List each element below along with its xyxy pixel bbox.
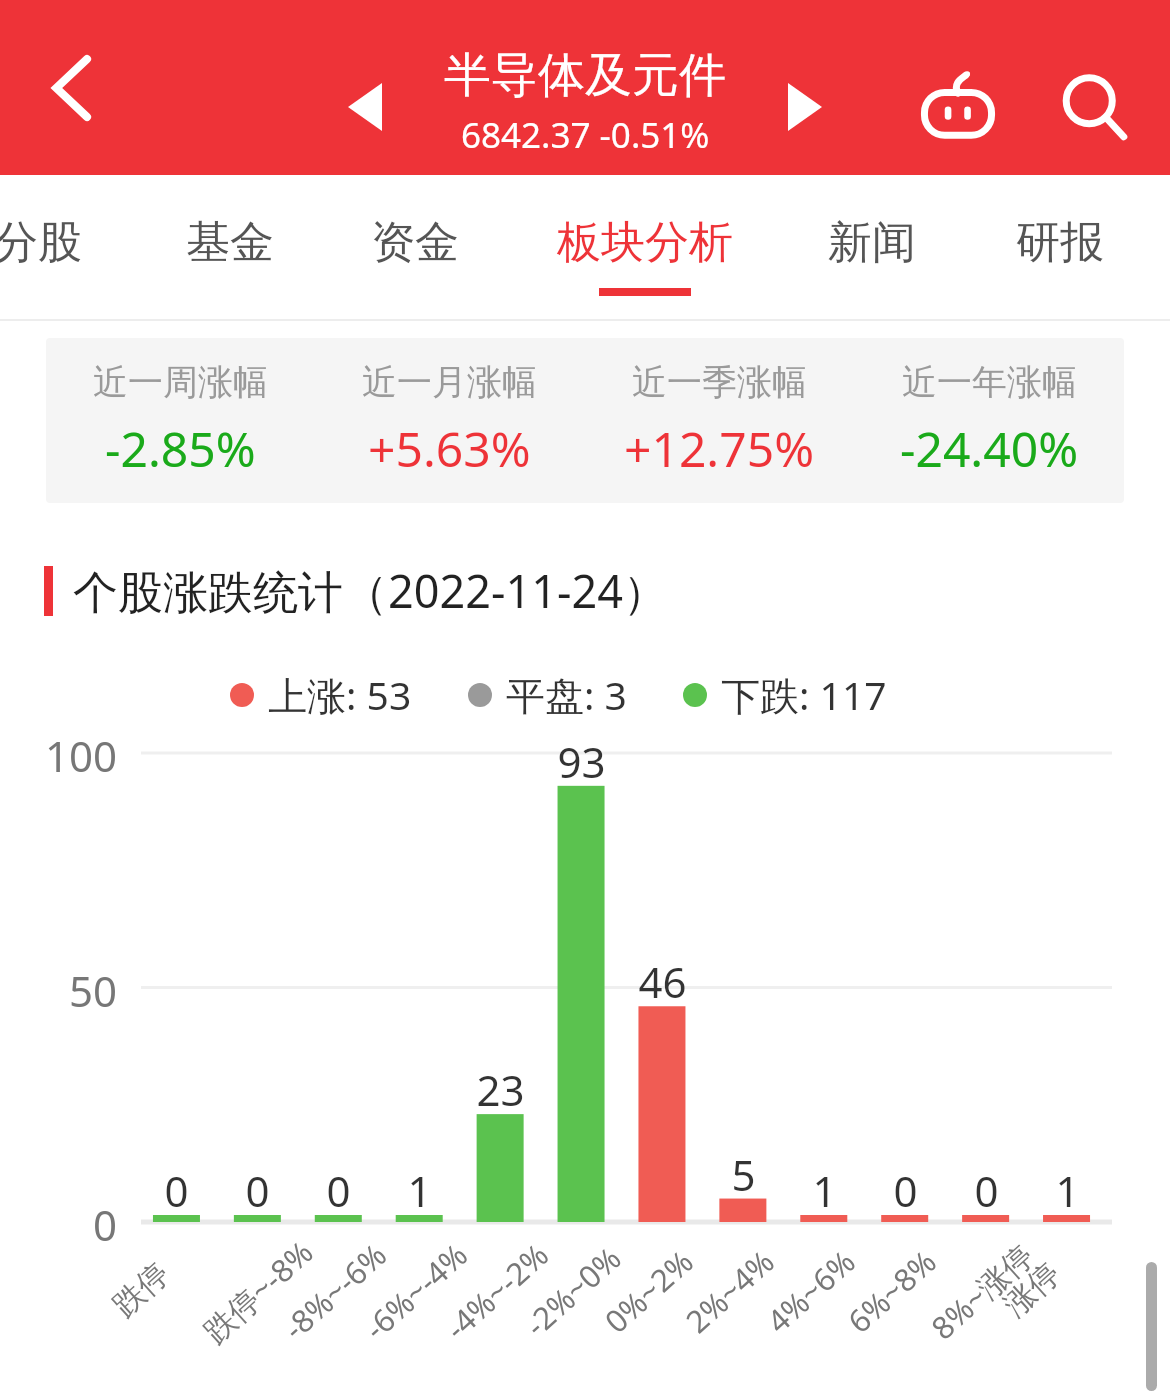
button[interactable]: 近一月涨幅 [315,338,584,503]
staticText: 近一周涨幅 [93,360,268,404]
staticText: 下跌: 117 [721,668,887,721]
button[interactable]: Previous sector [320,62,410,152]
button[interactable]: 近一周涨幅 [46,338,315,503]
staticText: 近一月涨幅 [362,360,537,404]
button[interactable]: 分股 [0,175,148,310]
staticText: 1 [1055,1162,1080,1219]
staticText: 0 [164,1162,189,1219]
staticText: +12.75% [624,416,815,481]
staticText: -2.85% [105,416,256,481]
staticText: 0 [245,1162,270,1219]
button[interactable]: 下跌: 117 [683,668,887,721]
button[interactable]: 上涨: 53 [230,668,412,721]
button[interactable]: Next sector [760,62,850,152]
button[interactable]: 近一季涨幅 [584,338,854,503]
staticText: 1 [812,1162,837,1219]
staticText: 5 [731,1146,756,1203]
staticText: 新闻 [828,215,916,270]
staticText: -4%~-2% [436,1234,557,1348]
staticText: -8%~-6% [274,1234,395,1348]
staticText: 跌停~-8% [194,1231,322,1351]
staticText: 1 [407,1162,432,1219]
staticText: 个股涨跌统计（2022-11-24） [73,560,668,621]
staticText: 100 [45,727,118,779]
staticText: 涨停 [996,1254,1068,1325]
staticText: 近一季涨幅 [632,360,807,404]
staticText: 6%~8% [838,1240,944,1342]
staticText: 半导体及元件 [444,46,726,105]
staticText: 资金 [371,215,459,270]
staticText: 基金 [186,215,274,270]
staticText: 93 [557,733,606,790]
staticText: 0 [893,1162,918,1219]
staticText: 跌停 [105,1254,177,1325]
staticText: +5.63% [368,416,531,481]
staticText: 分股 [0,215,82,270]
staticText: 板块分析 [557,215,733,270]
staticText: -2%~0% [516,1237,629,1345]
button[interactable]: 板块分析 [535,175,755,310]
button[interactable]: 资金 [305,175,525,310]
staticText: 23 [476,1061,525,1118]
staticText: 0%~2% [595,1240,701,1342]
button[interactable]: Search [1037,50,1152,165]
staticText: 0 [326,1162,351,1219]
staticText: 上涨: 53 [268,668,412,721]
staticText: 50 [69,962,118,1014]
button[interactable]: Back [18,23,128,153]
button[interactable]: AI assistant [900,50,1015,165]
staticText: 2%~4% [676,1240,782,1342]
staticText: 6842.37 -0.51% [461,111,710,159]
button[interactable]: 研报 [950,175,1170,310]
button[interactable]: 新闻 [762,175,982,310]
staticText: 46 [638,953,687,1010]
staticText: -6%~-4% [355,1234,476,1348]
staticText: 4%~6% [757,1240,863,1342]
staticText: -24.40% [900,416,1079,481]
staticText: 0 [93,1196,118,1248]
button[interactable]: 近一年涨幅 [854,338,1124,503]
staticText: 0 [974,1162,999,1219]
staticText: 平盘: 3 [506,668,627,721]
staticText: 8%~涨停 [922,1234,1042,1348]
staticText: 近一年涨幅 [902,360,1077,404]
button[interactable]: 平盘: 3 [468,668,627,721]
button[interactable]: 基金 [120,175,340,310]
staticText: 研报 [1016,215,1104,270]
